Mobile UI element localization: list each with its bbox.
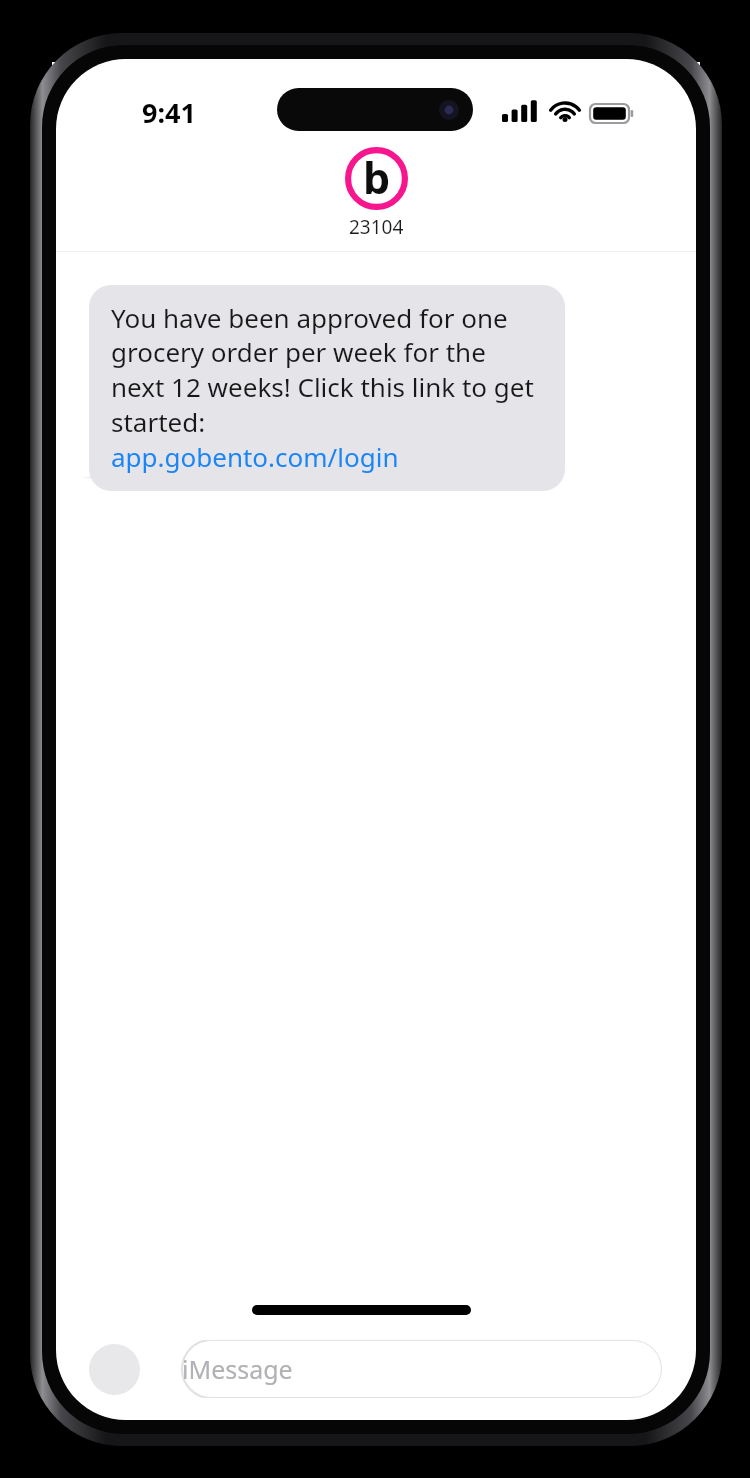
button[interactable]: You have been approved for one grocery o… <box>89 285 565 491</box>
button[interactable]: Conversation with 23104 <box>56 147 696 240</box>
button[interactable]: App drawer <box>89 1344 140 1395</box>
staticText: iMessage <box>182 1352 293 1386</box>
staticText: 23104 <box>349 214 404 240</box>
button[interactable]: iMessage <box>160 1340 662 1398</box>
staticText: 9:41 <box>142 94 196 131</box>
staticText: b <box>363 148 391 207</box>
staticText: You have been approved for one grocery o… <box>111 300 543 475</box>
